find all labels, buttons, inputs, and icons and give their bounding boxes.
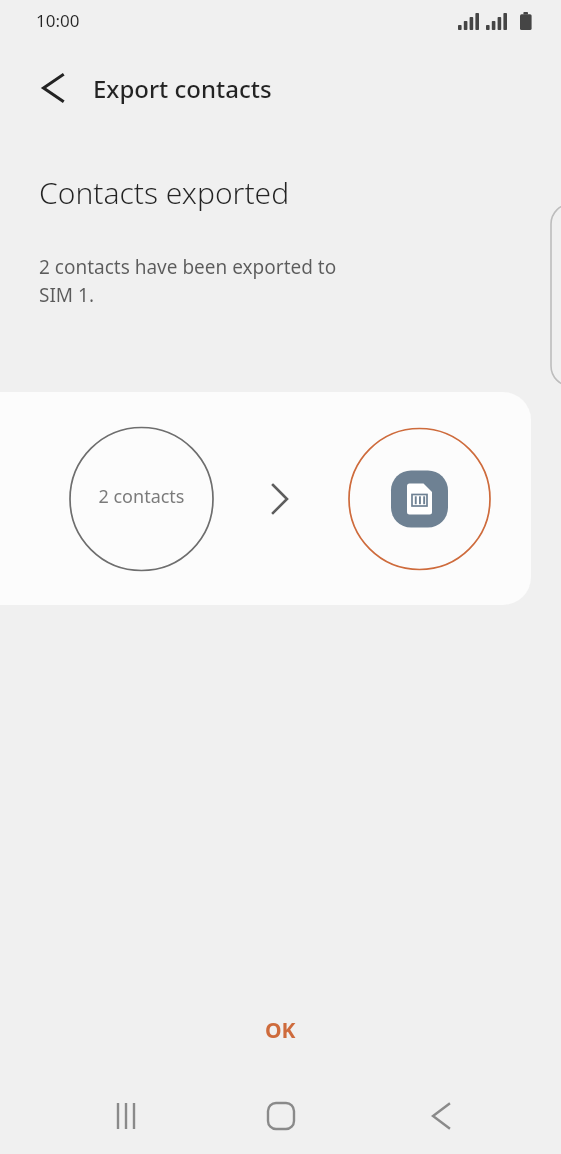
button[interactable]: 2 contacts [0, 392, 531, 605]
button[interactable]: Back [400, 1078, 480, 1154]
staticText: Export contacts [93, 72, 272, 105]
staticText: 2 contacts have been exported to SIM 1. [39, 254, 337, 308]
staticText: OK [265, 1016, 296, 1045]
button[interactable]: OK [200, 1002, 361, 1058]
staticText: 10:00 [36, 9, 80, 32]
button[interactable]: Home [241, 1078, 321, 1154]
staticText: Contacts exported [39, 172, 290, 213]
button[interactable]: Recents [86, 1078, 166, 1154]
button[interactable]: Back [26, 64, 78, 112]
staticText: 2 contacts [79, 484, 204, 514]
